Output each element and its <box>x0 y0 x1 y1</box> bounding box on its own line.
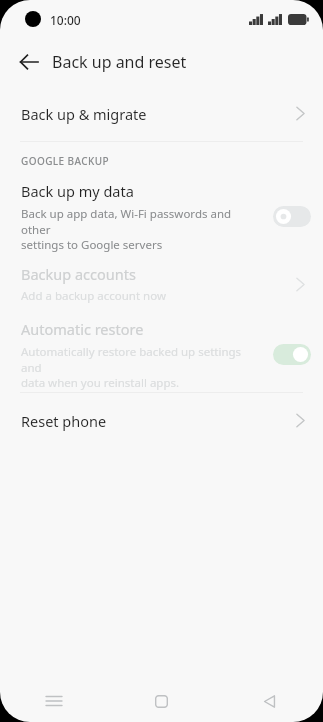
staticText: Back up app data, Wi-Fi passwords and ot… <box>21 206 253 252</box>
button[interactable]: Automatic restore <box>0 316 323 392</box>
button[interactable]: Backup accounts <box>0 252 323 316</box>
staticText: Add a backup account now <box>21 288 166 304</box>
button[interactable]: Recent apps <box>0 680 107 722</box>
button[interactable]: Back up my data <box>0 180 323 252</box>
staticText: Automatically restore backed up settings… <box>21 344 253 390</box>
button[interactable]: Back <box>215 680 323 722</box>
button[interactable]: On <box>273 344 311 365</box>
staticText: 10:00 <box>50 12 81 28</box>
button[interactable]: Back <box>12 45 46 79</box>
staticText: Back up and reset <box>52 51 187 73</box>
staticText: Back up my data <box>21 181 134 201</box>
staticText: Reset phone <box>21 411 107 431</box>
staticText: Automatic restore <box>21 319 144 339</box>
staticText: Backup accounts <box>21 264 136 284</box>
button[interactable]: Back up & migrate <box>0 86 323 141</box>
button[interactable]: Off <box>273 206 311 227</box>
button[interactable]: Home <box>107 680 215 722</box>
staticText: Back up & migrate <box>21 104 147 124</box>
staticText: GOOGLE BACKUP <box>21 154 109 168</box>
button[interactable]: Reset phone <box>0 393 323 448</box>
